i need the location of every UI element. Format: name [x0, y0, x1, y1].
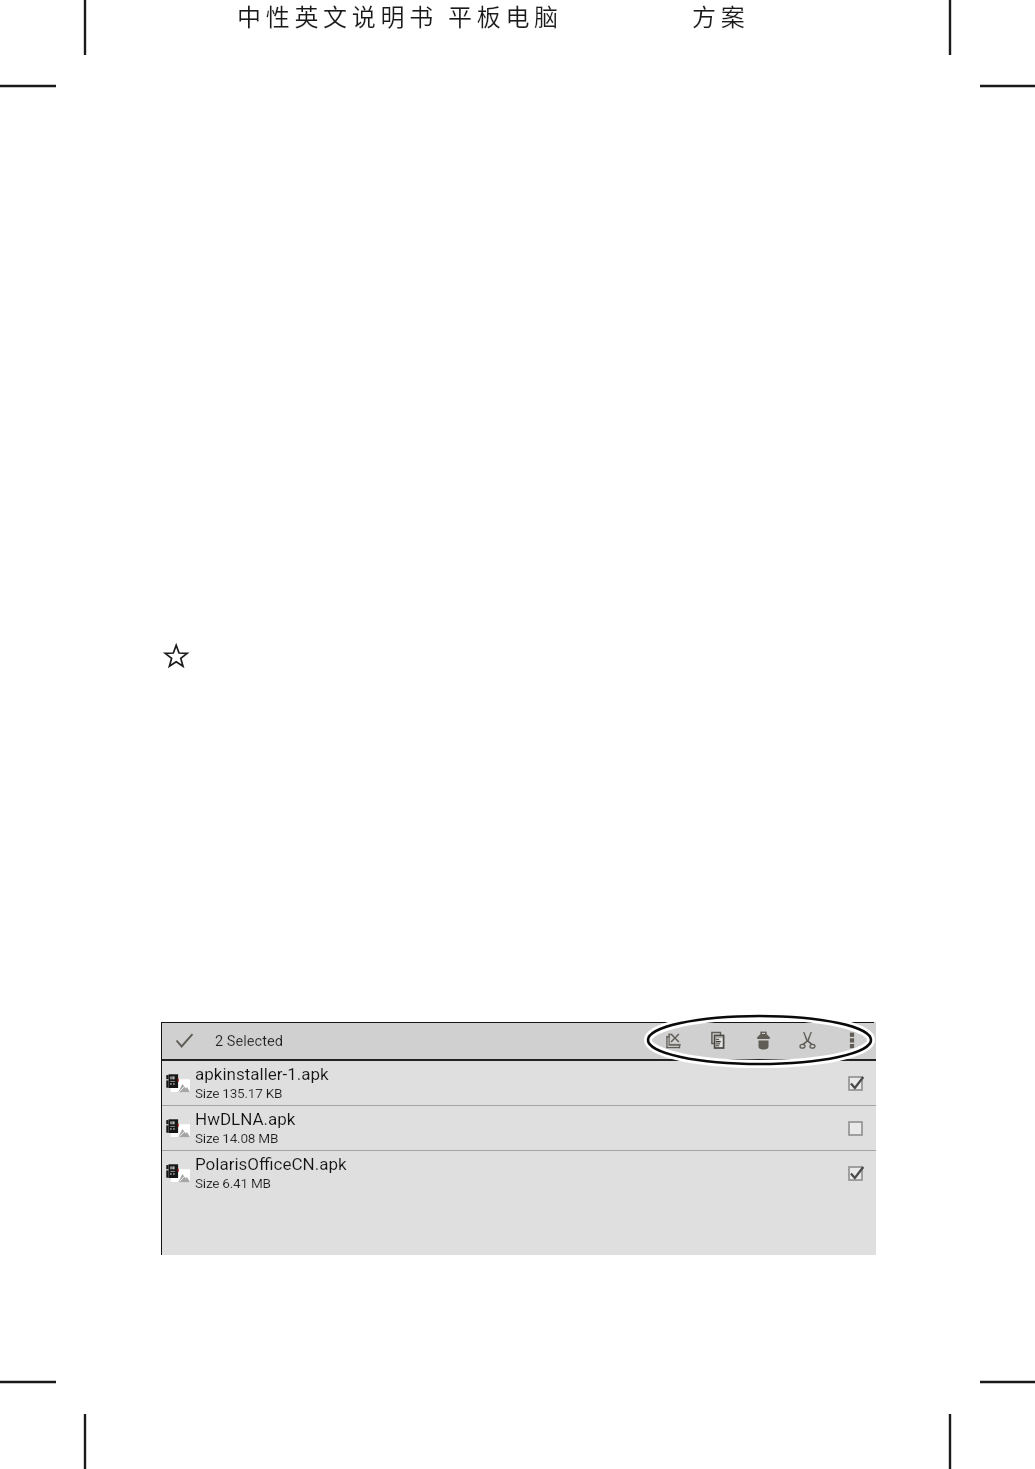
button[interactable]: More options [829, 1022, 876, 1059]
button[interactable]: Deselect all [651, 1022, 696, 1059]
staticText: Size 135.17 KB [195, 1085, 283, 1101]
staticText: Size 6.41 MB [195, 1175, 271, 1191]
button[interactable]: Select HwDLNA.apk [834, 1106, 876, 1150]
button[interactable]: Copy [696, 1022, 741, 1059]
button[interactable]: apkinstaller-1.apk [161, 1061, 876, 1105]
staticText: 方案 [692, 0, 750, 33]
staticText: HwDLNA.apk [195, 1109, 296, 1129]
button[interactable]: PolarisOfficeCN.apk [161, 1151, 876, 1195]
button[interactable]: Done [161, 1022, 207, 1059]
staticText: 中性英文说明书 平板电脑 [237, 0, 563, 33]
staticText: PolarisOfficeCN.apk [195, 1154, 347, 1174]
button[interactable]: Cut [785, 1022, 829, 1059]
button[interactable]: Selected PolarisOfficeCN.apk [834, 1151, 876, 1195]
button[interactable]: Delete [741, 1022, 785, 1059]
button[interactable]: Selected apkinstaller-1.apk [834, 1061, 876, 1105]
staticText: apkinstaller-1.apk [195, 1064, 329, 1084]
button[interactable]: HwDLNA.apk [161, 1106, 876, 1150]
staticText: 2 Selected [215, 1032, 283, 1049]
staticText: Size 14.08 MB [195, 1130, 279, 1146]
